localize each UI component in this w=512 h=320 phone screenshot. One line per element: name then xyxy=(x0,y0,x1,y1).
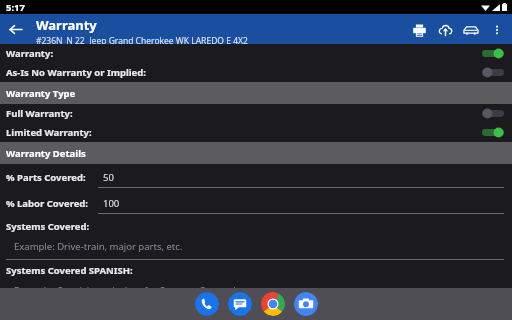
staticText: #236N_N 22_Jeep Grand Cherokee WK LAREDO… xyxy=(36,35,266,44)
button[interactable]: % Labor Covered: xyxy=(0,190,512,216)
staticText: 100 xyxy=(103,197,120,210)
staticText: Warranty Type xyxy=(6,87,76,100)
button[interactable]: Full Warranty: xyxy=(0,104,512,123)
button[interactable]: More options xyxy=(484,17,510,43)
button[interactable]: Messages xyxy=(228,292,252,316)
button[interactable]: Systems Covered SPANISH: xyxy=(0,260,512,288)
button[interactable]: Warranty: xyxy=(0,44,512,63)
button[interactable]: Limited Warranty: xyxy=(0,123,512,142)
staticText: 5:17 xyxy=(6,1,25,14)
button[interactable]: Vehicle xyxy=(458,17,484,43)
button[interactable]: Chrome xyxy=(261,292,285,316)
button[interactable]: Print xyxy=(406,17,432,43)
staticText: Warranty xyxy=(36,16,97,34)
button[interactable]: Upload to cloud xyxy=(432,17,458,43)
staticText: Example: Drive-train, major parts, etc. xyxy=(14,240,183,253)
button[interactable]: As-Is No Warranty or Implied: xyxy=(0,63,512,82)
staticText: 50 xyxy=(103,171,114,184)
staticText: Limited Warranty: xyxy=(6,126,482,139)
staticText: As-Is No Warranty or Implied: xyxy=(6,66,482,79)
button[interactable]: % Parts Covered: xyxy=(0,164,512,190)
staticText: % Parts Covered: xyxy=(6,171,86,184)
staticText: Warranty Details xyxy=(6,147,86,160)
button[interactable]: Camera xyxy=(294,292,318,316)
staticText: Enter the Spanish equivelent for Systems… xyxy=(14,284,239,288)
staticText: Systems Covered SPANISH: xyxy=(6,264,133,277)
button[interactable]: Phone xyxy=(195,292,219,316)
staticText: Systems Covered: xyxy=(6,220,90,233)
button[interactable]: Back xyxy=(0,14,30,44)
staticText: % Labor Covered: xyxy=(6,197,89,210)
staticText: Warranty: xyxy=(6,47,482,60)
staticText: Full Warranty: xyxy=(6,107,482,120)
button[interactable]: Systems Covered: xyxy=(0,216,512,260)
